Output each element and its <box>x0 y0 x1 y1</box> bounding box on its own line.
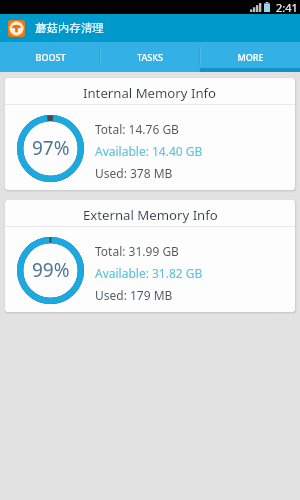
button[interactable]: TASKS <box>100 42 200 72</box>
button[interactable]: App icon <box>8 20 25 37</box>
staticText: 蘑菇内存清理 <box>35 21 104 35</box>
staticText: Used: 378 MB <box>95 165 173 181</box>
staticText: 97% <box>32 135 70 161</box>
button[interactable]: External Memory Info <box>5 200 295 312</box>
button[interactable]: MORE <box>200 42 300 72</box>
staticText: Available: 14.40 GB <box>95 143 203 159</box>
button[interactable]: BOOST <box>0 42 100 72</box>
staticText: Available: 31.82 GB <box>95 265 203 281</box>
staticText: External Memory Info <box>83 206 218 224</box>
staticText: Used: 179 MB <box>95 287 173 303</box>
button[interactable]: Internal Memory Info <box>5 78 295 190</box>
staticText: Total: 31.99 GB <box>95 243 179 259</box>
staticText: MORE <box>237 51 264 63</box>
staticText: 99% <box>32 257 70 283</box>
staticText: Internal Memory Info <box>83 84 217 102</box>
staticText: 2:41 <box>276 0 298 14</box>
staticText: TASKS <box>137 51 163 63</box>
staticText: Total: 14.76 GB <box>95 121 179 137</box>
staticText: BOOST <box>35 51 66 63</box>
